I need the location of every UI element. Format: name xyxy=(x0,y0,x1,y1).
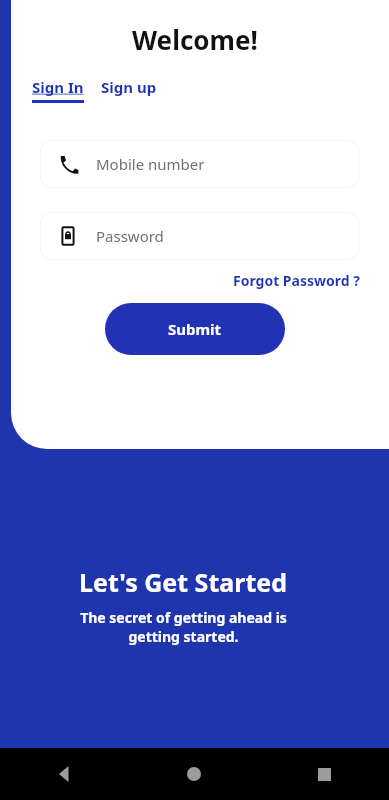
staticText: Let's Get Started xyxy=(79,565,287,599)
staticText: Password xyxy=(96,226,164,246)
button[interactable]: Password xyxy=(40,212,359,260)
button[interactable]: Sign In xyxy=(32,77,84,103)
staticText: Forgot Password ? xyxy=(233,271,360,290)
staticText: Submit xyxy=(168,319,222,339)
button[interactable]: Recent apps xyxy=(259,748,389,800)
staticText: Sign up xyxy=(101,77,157,97)
button[interactable]: Submit xyxy=(105,303,285,355)
button[interactable]: Mobile number xyxy=(40,140,359,188)
staticText: Sign In xyxy=(32,77,84,97)
staticText: Welcome! xyxy=(132,22,258,57)
button[interactable]: Back xyxy=(0,748,129,800)
button[interactable]: Sign up xyxy=(101,77,157,97)
button[interactable]: Home xyxy=(129,748,259,800)
staticText: The secret of getting ahead is getting s… xyxy=(80,608,287,646)
button[interactable]: Forgot Password ? xyxy=(233,271,360,290)
staticText: Mobile number xyxy=(96,154,205,174)
